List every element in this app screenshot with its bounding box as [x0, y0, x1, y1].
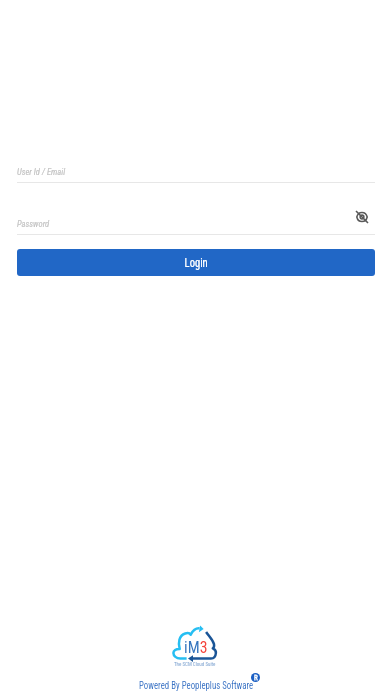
- staticText: The SCM Cloud Suite: [174, 661, 216, 667]
- staticText: R: [254, 674, 258, 682]
- button[interactable]: User Id / Email: [17, 160, 375, 183]
- staticText: Password: [17, 219, 49, 230]
- button[interactable]: Show password: [350, 205, 374, 229]
- button[interactable]: Password: [17, 212, 375, 235]
- staticText: Login: [185, 256, 208, 270]
- staticText: iM: [184, 637, 200, 657]
- staticText: Powered By Peopleplus Software: [139, 679, 253, 692]
- staticText: User Id / Email: [17, 167, 65, 178]
- staticText: 3: [200, 637, 208, 657]
- button[interactable]: Login: [17, 249, 375, 276]
